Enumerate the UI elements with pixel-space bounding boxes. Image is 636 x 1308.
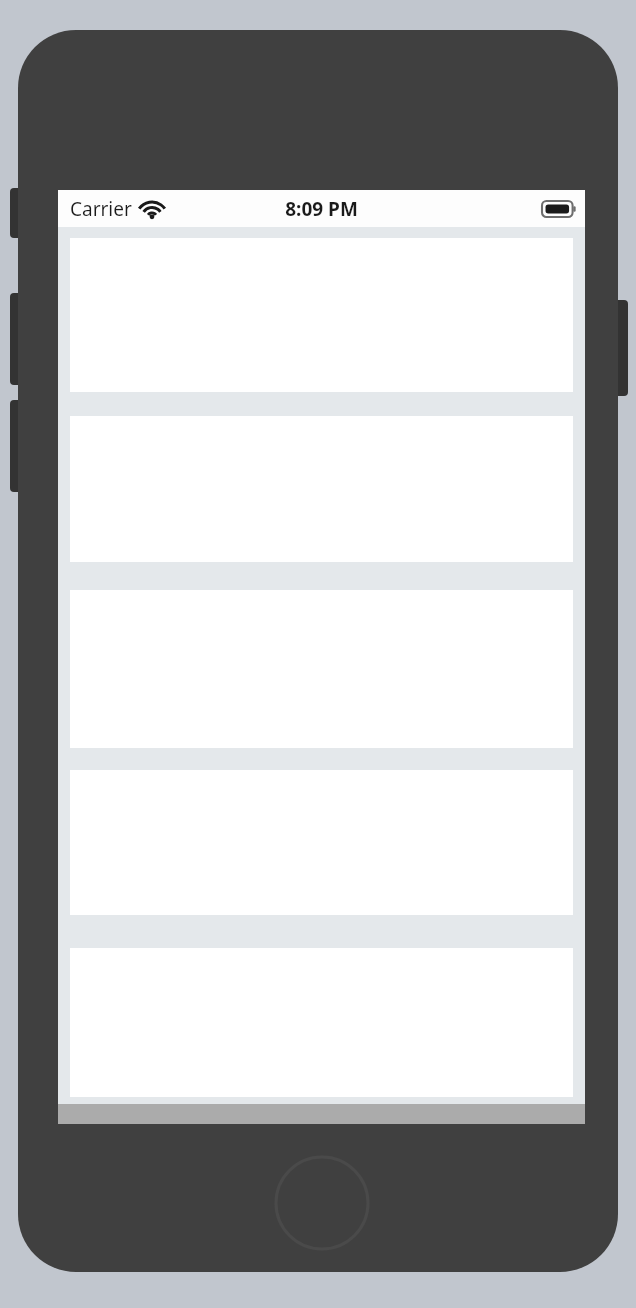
staticText: 8:09 PM bbox=[285, 196, 358, 222]
staticText: Carrier bbox=[70, 196, 132, 222]
